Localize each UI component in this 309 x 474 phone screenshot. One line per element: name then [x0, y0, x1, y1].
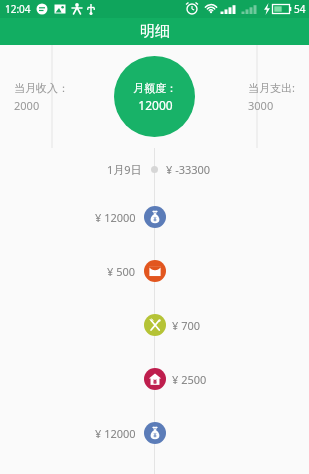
button[interactable]: Food 700 — [144, 314, 166, 336]
staticText: ¥ 500 — [107, 264, 136, 279]
button[interactable]: ¥ 2500 — [0, 352, 309, 406]
staticText: ¥ 2500 — [172, 372, 207, 387]
staticText: 2000 — [14, 98, 40, 113]
staticText: 12000 — [138, 97, 173, 113]
staticText: 当月支出: — [248, 80, 295, 95]
staticText: ¥ -33300 — [166, 162, 211, 177]
staticText: 明细 — [140, 22, 170, 41]
button[interactable]: ¥ 500 — [0, 244, 309, 298]
button[interactable]: ¥ 12000 — [0, 406, 309, 460]
button[interactable]: Red packet 500 — [144, 260, 166, 282]
button[interactable]: 当月收入： — [14, 79, 69, 115]
staticText: 12:04 — [5, 2, 31, 16]
button[interactable]: 1月9日 — [0, 148, 309, 190]
staticText: 1月9日 — [107, 162, 142, 177]
staticText: ¥ 700 — [172, 318, 201, 333]
staticText: ¥ 12000 — [95, 426, 136, 441]
button[interactable]: Income 12000 — [144, 206, 166, 228]
button[interactable]: 月额度： — [114, 56, 195, 137]
button[interactable]: ¥ 700 — [0, 298, 309, 352]
staticText: ¥ 12000 — [95, 210, 136, 225]
button[interactable]: Income 12000 — [144, 422, 166, 444]
staticText: 54 — [294, 2, 306, 16]
staticText: 月额度： — [133, 81, 177, 95]
button[interactable]: 当月支出: — [248, 78, 295, 115]
staticText: 3000 — [248, 98, 274, 113]
button[interactable]: Rent 2500 — [144, 368, 166, 390]
staticText: 当月收入： — [14, 81, 69, 95]
button[interactable]: ¥ 12000 — [0, 190, 309, 244]
